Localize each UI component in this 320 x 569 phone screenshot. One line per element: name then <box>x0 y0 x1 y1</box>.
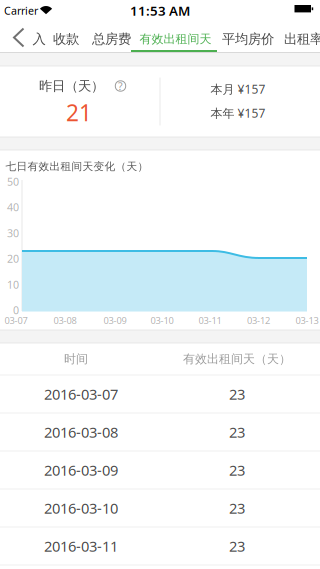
button[interactable]: 总房费 <box>92 31 131 47</box>
staticText: 23 <box>229 536 245 556</box>
staticText: 本月 ¥157 <box>210 81 265 97</box>
staticText: 03-13 <box>295 314 318 327</box>
staticText: 2016-03-07 <box>44 384 118 404</box>
staticText: 0 <box>13 303 19 317</box>
staticText: 有效出租间天 <box>139 32 211 46</box>
staticText: 23 <box>229 498 245 518</box>
button[interactable]: 说明 <box>114 80 126 92</box>
button[interactable]: 入 <box>32 31 45 47</box>
staticText: 23 <box>229 422 245 442</box>
staticText: 昨日（天） <box>39 78 104 94</box>
button[interactable]: 有效出租间天 <box>139 32 211 46</box>
staticText: 03-08 <box>53 314 76 327</box>
staticText: 03-10 <box>150 314 173 327</box>
staticText: 出租率 <box>284 31 320 47</box>
staticText: ? <box>118 79 123 93</box>
staticText: 10 <box>7 277 19 292</box>
staticText: 23 <box>229 384 245 404</box>
staticText: 11:53 AM <box>130 2 190 19</box>
staticText: 有效出租间天（天） <box>183 352 291 366</box>
staticText: Carrier <box>4 3 38 18</box>
staticText: 21 <box>66 97 92 127</box>
staticText: 收款 <box>53 31 79 47</box>
staticText: 50 <box>7 174 19 189</box>
staticText: 03-07 <box>4 314 27 327</box>
button[interactable]: 平均房价 <box>222 31 274 47</box>
button[interactable]: Back <box>0 0 36 53</box>
staticText: 2016-03-09 <box>44 460 118 480</box>
staticText: 40 <box>7 200 19 214</box>
staticText: 2016-03-10 <box>44 498 118 518</box>
staticText: 总房费 <box>92 31 131 47</box>
staticText: 20 <box>7 251 19 266</box>
staticText: 七日有效出租间天变化（天） <box>5 160 148 173</box>
staticText: 平均房价 <box>222 31 274 47</box>
staticText: 30 <box>7 226 19 240</box>
staticText: 入 <box>32 31 45 47</box>
staticText: 03-11 <box>198 314 221 327</box>
staticText: 时间 <box>64 352 88 366</box>
button[interactable]: 收款 <box>53 31 79 47</box>
staticText: 2016-03-11 <box>44 536 118 556</box>
button[interactable]: 出租率 <box>284 31 320 47</box>
staticText: 03-12 <box>247 314 270 327</box>
staticText: 03-09 <box>103 314 126 327</box>
staticText: 本年 ¥157 <box>210 105 265 121</box>
staticText: 2016-03-08 <box>44 422 118 442</box>
staticText: 23 <box>229 460 245 480</box>
